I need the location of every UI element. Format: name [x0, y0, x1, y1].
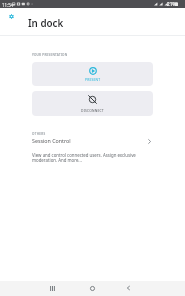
staticText: In dock: [28, 17, 64, 30]
button[interactable]: Back: [116, 281, 142, 294]
button[interactable]: PRESENT: [32, 62, 153, 86]
staticText: 21%: [167, 1, 177, 7]
staticText: OTHERS: [32, 132, 46, 136]
staticText: 11:54: [2, 2, 14, 8]
staticText: PRESENT: [85, 77, 101, 81]
button[interactable]: Home: [80, 281, 106, 294]
button[interactable]: Session Control: [0, 135, 185, 166]
staticText: Session Control: [32, 137, 71, 144]
staticText: View and control connected users. Assign…: [32, 152, 151, 163]
button[interactable]: DISCONNECT: [32, 91, 153, 116]
staticText: YOUR PRESENTATION: [32, 53, 68, 57]
button[interactable]: Settings: [9, 14, 14, 19]
staticText: DISCONNECT: [81, 108, 104, 112]
button[interactable]: Recent apps: [39, 281, 65, 294]
